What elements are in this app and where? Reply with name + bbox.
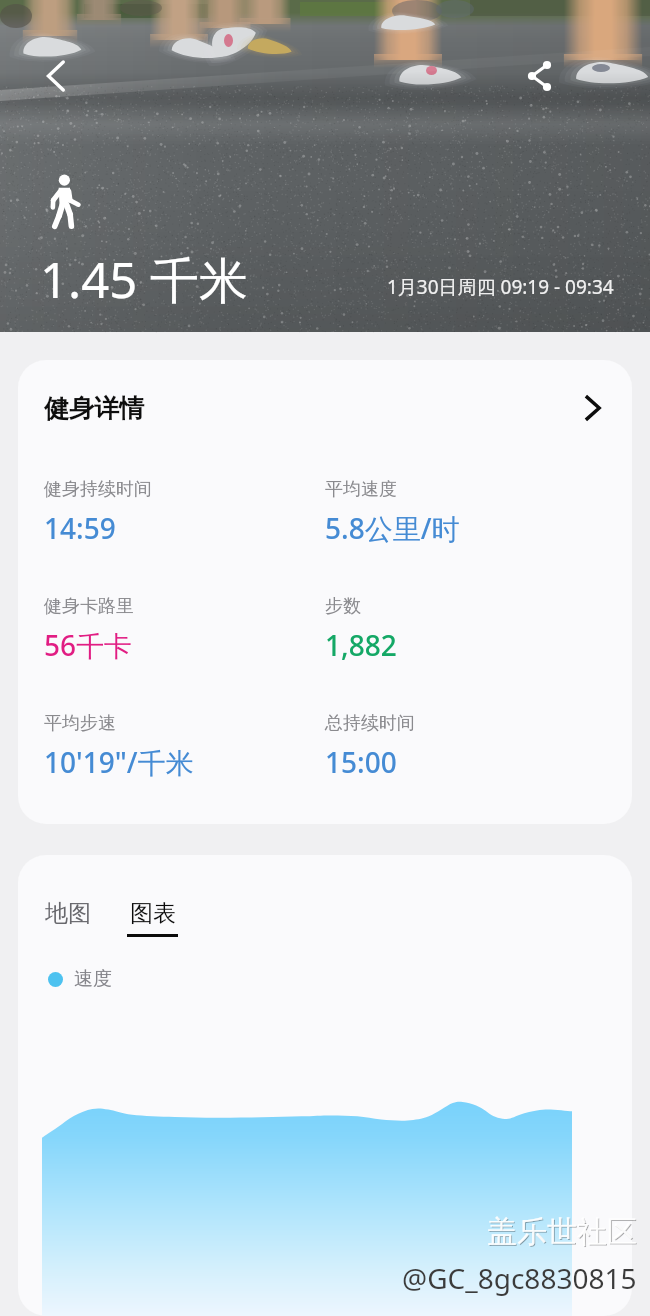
staticText: 盖乐世社区 (488, 1214, 638, 1252)
staticText: 15:00 (325, 743, 397, 781)
button[interactable]: 健身详情 (44, 390, 610, 426)
staticText: 5.8公里/时 (325, 509, 460, 547)
button[interactable]: 图表 (127, 899, 178, 937)
staticText: 平均步速 (44, 712, 116, 735)
staticText: 56千卡 (44, 626, 133, 664)
staticText: 健身卡路里 (44, 595, 134, 618)
staticText: 步数 (325, 595, 361, 618)
staticText: 速度 (74, 967, 112, 991)
staticText: 1月30日周四 09:19 - 09:34 (387, 274, 614, 300)
staticText: 健身详情 (44, 393, 144, 424)
staticText: 图表 (130, 899, 176, 928)
button[interactable]: Share (516, 50, 566, 100)
staticText: 1.45 千米 (40, 246, 248, 313)
staticText: 1,882 (325, 626, 397, 664)
staticText: 14:59 (44, 509, 116, 547)
staticText: 总持续时间 (325, 712, 415, 735)
staticText: 盖乐世社区 (487, 1213, 637, 1251)
staticText: 地图 (45, 899, 91, 928)
staticText: 平均速度 (325, 478, 397, 501)
button[interactable]: Back (30, 50, 82, 102)
staticText: @GC_8gc8830815 (402, 1259, 637, 1297)
staticText: 健身持续时间 (44, 478, 152, 501)
button[interactable]: 地图 (45, 899, 91, 928)
staticText: 10'19"/千米 (44, 743, 194, 781)
